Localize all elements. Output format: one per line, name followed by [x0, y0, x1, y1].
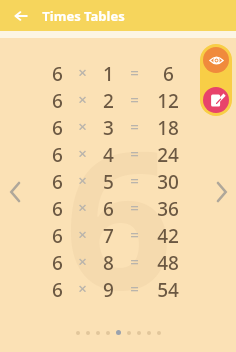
- staticText: =: [130, 197, 139, 217]
- staticText: 6: [52, 142, 63, 164]
- staticText: ×: [78, 89, 87, 109]
- staticText: Times Tables: [42, 7, 125, 25]
- staticText: 6: [52, 250, 63, 272]
- staticText: 36: [157, 196, 179, 218]
- staticText: 4: [103, 142, 114, 164]
- staticText: ×: [78, 62, 87, 82]
- staticText: 8: [103, 250, 114, 272]
- staticText: 6: [52, 223, 63, 245]
- staticText: 3: [103, 115, 114, 137]
- button[interactable]: Back: [6, 1, 36, 31]
- staticText: ×: [78, 251, 87, 271]
- button[interactable]: Show answers: [203, 47, 229, 73]
- staticText: 6: [64, 86, 173, 345]
- staticText: 18: [157, 115, 179, 137]
- staticText: =: [130, 251, 139, 271]
- staticText: 6: [52, 88, 63, 110]
- staticText: ×: [78, 278, 87, 298]
- staticText: 6: [52, 61, 63, 83]
- staticText: 1: [103, 61, 114, 83]
- staticText: ×: [78, 197, 87, 217]
- button[interactable]: Next table: [208, 176, 234, 208]
- staticText: 7: [103, 223, 114, 245]
- staticText: =: [130, 170, 139, 190]
- staticText: =: [130, 224, 139, 244]
- staticText: 48: [157, 250, 179, 272]
- staticText: 6: [163, 61, 174, 83]
- staticText: ×: [78, 170, 87, 190]
- staticText: 42: [157, 223, 179, 245]
- staticText: 2: [103, 88, 114, 110]
- staticText: 6: [52, 277, 63, 299]
- staticText: =: [130, 143, 139, 163]
- staticText: 30: [157, 169, 179, 191]
- staticText: =: [130, 278, 139, 298]
- staticText: 24: [157, 142, 179, 164]
- staticText: 5: [103, 169, 114, 191]
- staticText: 12: [157, 88, 179, 110]
- staticText: 54: [157, 277, 179, 299]
- button[interactable]: Edit notes: [203, 87, 229, 113]
- staticText: =: [130, 89, 139, 109]
- button[interactable]: Previous table: [2, 176, 28, 208]
- staticText: 6: [103, 196, 114, 218]
- staticText: =: [130, 116, 139, 136]
- staticText: 9: [103, 277, 114, 299]
- staticText: =: [130, 62, 139, 82]
- staticText: 6: [52, 169, 63, 191]
- staticText: ×: [78, 143, 87, 163]
- staticText: ×: [78, 116, 87, 136]
- staticText: 6: [52, 115, 63, 137]
- staticText: ×: [78, 224, 87, 244]
- staticText: 6: [52, 196, 63, 218]
